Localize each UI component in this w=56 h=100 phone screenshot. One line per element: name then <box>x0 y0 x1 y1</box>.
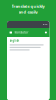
staticText: English <box>10 39 20 42</box>
button[interactable]: Search <box>44 30 48 35</box>
button[interactable]: Menu <box>8 30 13 35</box>
staticText: and easily <box>18 9 37 14</box>
staticText: Translate quickly <box>11 3 44 9</box>
staticText: Translator <box>14 31 28 34</box>
